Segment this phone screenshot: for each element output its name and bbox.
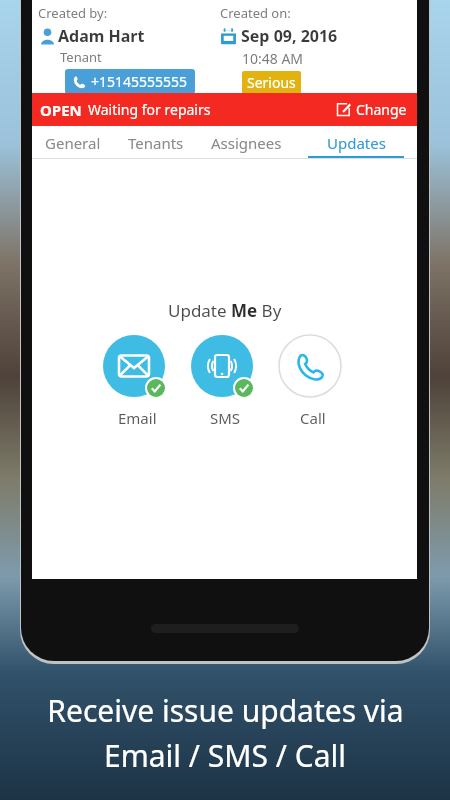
staticText: Receive issue updates via: [47, 690, 404, 731]
staticText: General: [45, 133, 101, 153]
staticText: Created by:: [38, 4, 108, 22]
staticText: Update Me By: [168, 299, 282, 322]
button[interactable]: +15145555555: [65, 69, 195, 94]
staticText: +15145555555: [91, 72, 188, 91]
staticText: Email / SMS / Call: [104, 735, 346, 776]
staticText: Sep 09, 2016: [241, 25, 338, 47]
staticText: Tenant: [60, 48, 102, 66]
button[interactable]: Change: [334, 100, 409, 119]
button[interactable]: General: [32, 126, 114, 159]
staticText: SMS: [210, 408, 241, 428]
button[interactable]: Call: [279, 335, 347, 428]
button[interactable]: Assignees: [198, 126, 295, 159]
button[interactable]: Tenants: [114, 126, 198, 159]
staticText: OPEN: [40, 100, 82, 120]
button[interactable]: OPEN: [32, 93, 417, 126]
staticText: Created on:: [220, 4, 291, 22]
staticText: Adam Hart: [58, 25, 145, 47]
staticText: Assignees: [211, 133, 282, 153]
button[interactable]: Email: [103, 335, 171, 428]
button[interactable]: Updates: [295, 126, 417, 159]
button[interactable]: Serious: [242, 71, 301, 94]
staticText: Change: [356, 100, 407, 119]
staticText: 10:48 AM: [242, 49, 304, 68]
staticText: Updates: [327, 133, 386, 153]
staticText: Email: [118, 408, 157, 428]
staticText: Waiting for repairs: [88, 100, 211, 119]
staticText: Serious: [247, 73, 296, 92]
staticText: Tenants: [128, 133, 184, 153]
button[interactable]: SMS: [191, 335, 259, 428]
staticText: Call: [300, 408, 326, 428]
